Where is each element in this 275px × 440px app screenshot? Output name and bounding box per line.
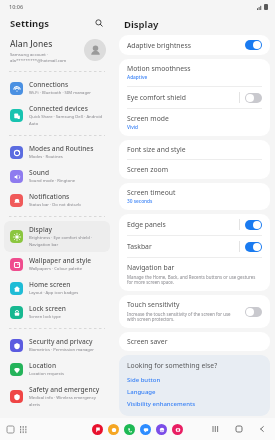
button[interactable]: Touch sensitivity (119, 295, 270, 328)
staticText: Location (29, 361, 57, 370)
staticText: Quick Share · Samsung DeX · Android (29, 114, 103, 120)
button[interactable]: Toggle (245, 220, 262, 230)
staticText: Alan Jones (10, 38, 53, 50)
staticText: Home screen (29, 280, 71, 289)
button[interactable]: Search (92, 16, 106, 30)
button[interactable]: Recent apps (6, 425, 15, 434)
button[interactable]: App (92, 424, 103, 435)
button[interactable]: Security and privacy (4, 333, 110, 357)
staticText: Settings (10, 17, 49, 30)
staticText: ala*********@hotmail.com (10, 57, 67, 63)
button[interactable]: Motion smoothness (119, 59, 270, 86)
staticText: Connections (29, 80, 69, 89)
button[interactable]: All apps (19, 425, 28, 434)
staticText: Vivid (127, 124, 139, 131)
staticText: Location requests (29, 371, 64, 377)
staticText: Notifications (29, 192, 70, 201)
staticText: Screen timeout (127, 188, 176, 197)
staticText: Motion smoothness (127, 64, 191, 73)
staticText: Status bar · Do not disturb (29, 202, 81, 208)
staticText: Display (124, 18, 159, 31)
button[interactable]: Connections (4, 76, 110, 100)
staticText: 30 seconds (127, 198, 153, 205)
staticText: Navigation bar (127, 263, 175, 272)
staticText: Brightness · Eye comfort shield · (29, 235, 93, 241)
button[interactable]: Eye comfort shield (119, 87, 270, 108)
staticText: Adaptive brightness (127, 41, 191, 50)
staticText: Adaptive (127, 74, 148, 81)
staticText: Samsung account · (10, 51, 49, 57)
button[interactable]: Safety and emergency (4, 381, 110, 412)
button[interactable]: Modes and Routines (4, 140, 110, 164)
staticText: Security and privacy (29, 337, 93, 346)
staticText: Eye comfort shield (127, 93, 187, 102)
staticText: Lock screen (29, 304, 66, 313)
staticText: Biometrics · Permission manager (29, 347, 95, 353)
staticText: Wallpapers · Colour palette (29, 266, 83, 272)
button[interactable]: Alan Jones (0, 33, 114, 67)
staticText: Screen mode (127, 114, 169, 123)
staticText: Sound mode · Ringtone (29, 178, 76, 184)
button[interactable]: Notifications (4, 188, 110, 212)
button[interactable]: App (124, 424, 135, 435)
staticText: Edge panels (127, 220, 166, 229)
staticText: Screen zoom (127, 165, 169, 174)
button[interactable]: App (156, 424, 167, 435)
staticText: Increase the touch sensitivity of the sc… (127, 311, 239, 323)
staticText: Modes · Routines (29, 154, 63, 160)
button[interactable]: App (172, 424, 183, 435)
button[interactable]: Back (257, 424, 267, 434)
button[interactable]: Visibility enhancements (127, 398, 196, 410)
button[interactable]: Screen timeout (119, 183, 270, 210)
staticText: Taskbar (127, 242, 152, 251)
button[interactable]: Font size and style (119, 140, 270, 159)
button[interactable]: Lock screen (4, 300, 110, 324)
staticText: Font size and style (127, 145, 186, 154)
button[interactable]: Edge panels (119, 214, 270, 235)
button[interactable]: Screen zoom (119, 160, 270, 179)
staticText: Sound (29, 168, 50, 177)
button[interactable]: Home (234, 424, 244, 434)
button[interactable]: Toggle (245, 242, 262, 252)
button[interactable]: Connected devices (4, 100, 110, 131)
staticText: Connected devices (29, 104, 88, 113)
button[interactable]: Location (4, 357, 110, 381)
button[interactable]: App (108, 424, 119, 435)
button[interactable]: Toggle (245, 93, 262, 103)
button[interactable]: App (140, 424, 151, 435)
button[interactable]: Side button (127, 374, 161, 386)
button[interactable]: Language (127, 386, 156, 398)
button[interactable]: Display (4, 221, 110, 252)
staticText: Modes and Routines (29, 144, 94, 153)
button[interactable]: Sound (4, 164, 110, 188)
staticText: Display (29, 225, 52, 234)
staticText: Navigation bar (29, 242, 59, 248)
button[interactable]: Screen saver (119, 332, 270, 351)
staticText: Safety and emergency (29, 385, 100, 394)
button[interactable]: Home screen (4, 276, 110, 300)
button[interactable]: Recents (211, 424, 221, 434)
staticText: Manage the Home, Back, and Recents butto… (127, 274, 262, 286)
staticText: 10:06 (9, 3, 24, 10)
button[interactable]: Adaptive brightness (119, 35, 270, 55)
button[interactable]: Wallpaper and style (4, 252, 110, 276)
button[interactable]: Taskbar (119, 236, 270, 257)
staticText: Medical info · Wireless emergency (29, 395, 96, 401)
staticText: Layout · App icon badges (29, 290, 79, 296)
button[interactable]: Toggle (245, 307, 262, 317)
staticText: Auto (29, 121, 39, 127)
staticText: Wallpaper and style (29, 256, 92, 265)
staticText: alerts (29, 402, 41, 408)
staticText: Touch sensitivity (127, 300, 180, 309)
staticText: Looking for something else? (127, 361, 218, 370)
staticText: Screen saver (127, 337, 168, 346)
button[interactable]: Toggle (245, 40, 262, 50)
button[interactable]: Screen mode (119, 109, 270, 136)
button[interactable]: Navigation bar (119, 258, 270, 291)
staticText: Wi-Fi · Bluetooth · SIM manager (29, 90, 92, 96)
staticText: Screen lock type (29, 314, 61, 320)
